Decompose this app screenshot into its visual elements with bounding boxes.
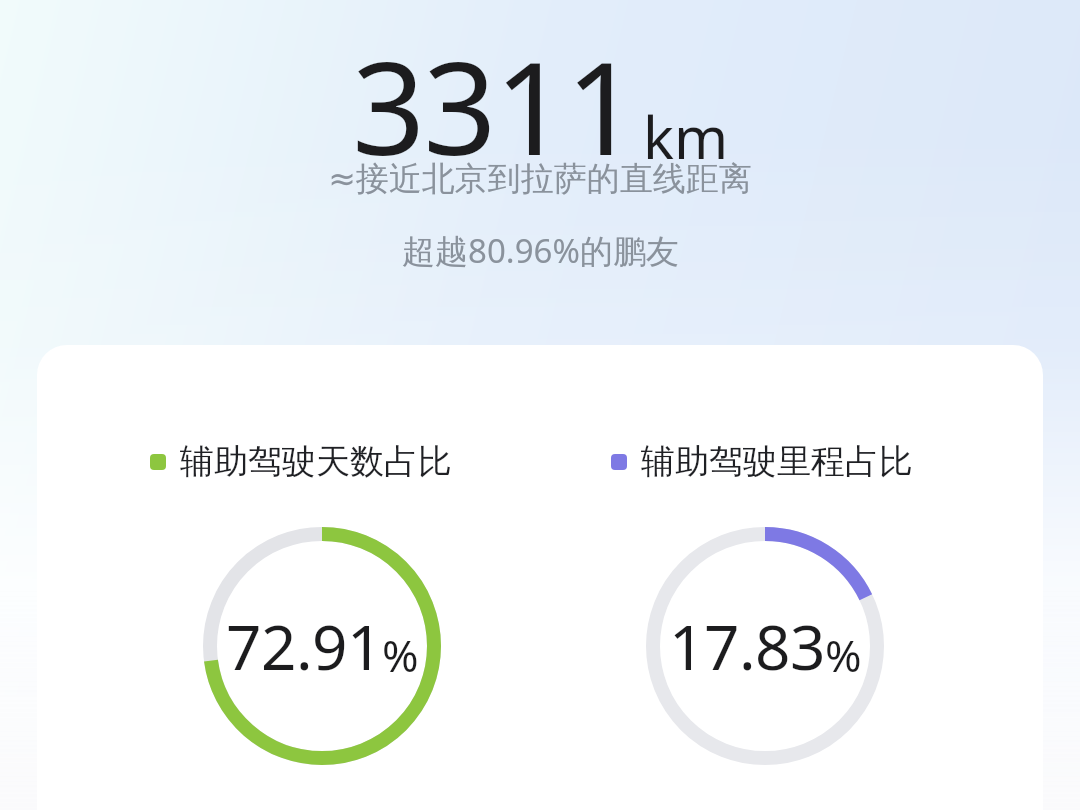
staticText: % (825, 625, 862, 685)
staticText: 17.83 (669, 604, 825, 688)
button[interactable]: 辅助驾驶里程占比 (611, 440, 913, 492)
button[interactable] (37, 345, 1043, 810)
button[interactable]: 辅助驾驶天数占比 72.91% (203, 527, 441, 765)
button[interactable]: 辅助驾驶里程占比 17.83% (646, 527, 884, 765)
staticText: 辅助驾驶天数占比 (180, 440, 452, 483)
staticText: 3311 (352, 18, 637, 192)
staticText: 72.91 (226, 604, 382, 688)
staticText: ≈接近北京到拉萨的直线距离 (328, 158, 752, 200)
button[interactable]: 辅助驾驶天数占比 (150, 440, 452, 492)
staticText: 辅助驾驶里程占比 (641, 440, 913, 483)
staticText: 超越80.96%的鹏友 (402, 228, 679, 273)
staticText: km (643, 97, 729, 176)
staticText: % (382, 625, 419, 685)
